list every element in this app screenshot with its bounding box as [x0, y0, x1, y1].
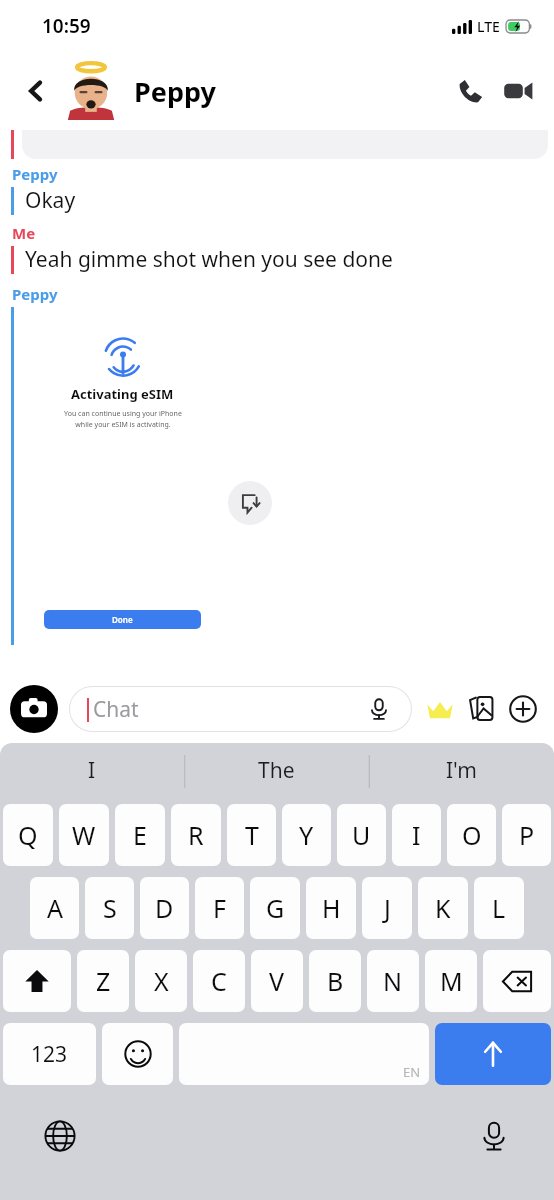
button[interactable]: Shift: [3, 950, 71, 1012]
staticText: I: [88, 756, 96, 785]
staticText: S: [103, 891, 117, 925]
staticText: LTE: [477, 17, 500, 36]
button[interactable]: I: [0, 743, 184, 798]
staticText: D: [155, 891, 174, 925]
button[interactable]: The: [184, 743, 369, 798]
button[interactable]: P: [502, 804, 551, 866]
button[interactable]: I'm: [369, 743, 554, 798]
button[interactable]: Space: [179, 1023, 429, 1085]
button[interactable]: Camera: [10, 685, 58, 733]
staticText: Peppy: [12, 164, 58, 184]
button[interactable]: Y: [282, 804, 331, 866]
staticText: A: [47, 891, 63, 925]
staticText: E: [133, 818, 147, 852]
button[interactable]: A: [30, 877, 79, 939]
button[interactable]: Emoji: [102, 1023, 173, 1085]
staticText: Okay: [25, 186, 76, 215]
button[interactable]: More: [502, 688, 544, 730]
staticText: K: [435, 891, 451, 925]
button[interactable]: 123: [3, 1023, 96, 1085]
staticText: P: [519, 818, 535, 852]
staticText: Activating eSIM: [71, 385, 174, 403]
button[interactable]: K: [418, 877, 468, 939]
staticText: G: [266, 891, 285, 925]
button[interactable]: I: [392, 804, 441, 866]
staticText: You can continue using your iPhone while…: [64, 409, 182, 429]
button[interactable]: Done: [44, 610, 201, 629]
button[interactable]: Voice message: [362, 692, 396, 726]
staticText: C: [211, 964, 227, 998]
staticText: 10:59: [42, 13, 91, 39]
staticText: Yeah gimme shot when you see done: [25, 245, 393, 274]
button[interactable]: Bitmoji crown: [420, 689, 460, 729]
button[interactable]: Stickers: [460, 688, 502, 730]
button[interactable]: Call: [446, 67, 494, 115]
button[interactable]: G: [250, 877, 300, 939]
staticText: L: [492, 891, 506, 925]
button[interactable]: Dictation: [470, 1112, 518, 1160]
button[interactable]: D: [140, 877, 189, 939]
staticText: U: [352, 818, 371, 852]
button[interactable]: T: [227, 804, 276, 866]
button[interactable]: Save: [228, 481, 272, 525]
button[interactable]: Change language: [36, 1112, 84, 1160]
staticText: V: [269, 964, 285, 998]
button[interactable]: W: [59, 804, 109, 866]
staticText: Peppy: [12, 284, 58, 304]
button[interactable]: B: [309, 950, 361, 1012]
button[interactable]: Chat: [69, 686, 412, 732]
button[interactable]: Backspace: [483, 950, 551, 1012]
button[interactable]: R: [171, 804, 221, 866]
staticText: Peppy: [134, 73, 216, 110]
button[interactable]: U: [337, 804, 386, 866]
button[interactable]: H: [306, 877, 356, 939]
button[interactable]: N: [367, 950, 419, 1012]
button[interactable]: Z: [77, 950, 129, 1012]
button[interactable]: X: [135, 950, 187, 1012]
staticText: M: [440, 964, 463, 998]
staticText: X: [154, 964, 169, 998]
staticText: 123: [31, 1040, 68, 1069]
staticText: Me: [12, 223, 36, 243]
button[interactable]: E: [115, 804, 165, 866]
button[interactable]: L: [474, 877, 524, 939]
button[interactable]: O: [447, 804, 496, 866]
button[interactable]: F: [195, 877, 244, 939]
button[interactable]: Q: [3, 804, 53, 866]
staticText: I: [412, 818, 421, 852]
staticText: N: [383, 964, 403, 998]
button[interactable]: S: [85, 877, 134, 939]
staticText: R: [188, 818, 204, 852]
staticText: Y: [299, 818, 314, 852]
button[interactable]: Video call: [494, 67, 542, 115]
staticText: Q: [18, 818, 38, 852]
button[interactable]: Profile: [62, 62, 120, 120]
button[interactable]: C: [193, 950, 245, 1012]
staticText: F: [213, 891, 226, 925]
staticText: B: [327, 964, 344, 998]
button[interactable]: J: [362, 877, 412, 939]
staticText: I'm: [446, 756, 477, 785]
button[interactable]: V: [251, 950, 303, 1012]
button[interactable]: Send: [435, 1023, 551, 1085]
staticText: H: [322, 891, 341, 925]
button[interactable]: Yeah gimme shot when you see done: [0, 245, 554, 274]
staticText: EN: [403, 1063, 421, 1081]
button[interactable]: Okay: [0, 186, 554, 215]
staticText: J: [384, 891, 391, 925]
staticText: Chat: [93, 695, 139, 724]
staticText: Z: [96, 964, 111, 998]
staticText: The: [258, 756, 295, 785]
staticText: O: [462, 818, 482, 852]
staticText: T: [245, 818, 259, 852]
staticText: Done: [112, 614, 133, 625]
button[interactable]: Activating eSIM: [27, 309, 218, 639]
button[interactable]: Back: [14, 69, 58, 113]
staticText: W: [72, 818, 96, 852]
button[interactable]: M: [425, 950, 477, 1012]
